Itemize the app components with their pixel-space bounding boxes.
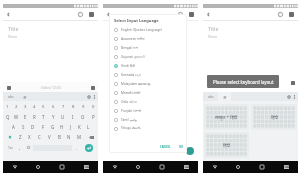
button[interactable]: Shift — [3, 132, 16, 142]
button[interactable]: Switch keyboard — [174, 161, 198, 173]
button[interactable]: N — [64, 132, 74, 142]
button[interactable]: Recent apps — [250, 161, 274, 173]
button[interactable]: Enter — [81, 142, 97, 153]
button[interactable]: R — [30, 112, 39, 122]
button[interactable]: I — [68, 112, 78, 122]
button[interactable]: Settings — [85, 93, 92, 100]
button[interactable]: Kannada ಕನ್ನಡ — [109, 70, 187, 79]
button[interactable]: Back — [4, 10, 13, 19]
button[interactable]: M — [74, 132, 84, 142]
button[interactable]: D — [28, 122, 38, 132]
button[interactable]: More — [292, 94, 297, 99]
button[interactable]: More — [92, 94, 97, 99]
button[interactable]: More options — [289, 79, 297, 87]
button[interactable]: B — [54, 132, 64, 142]
button[interactable]: Y — [48, 112, 58, 122]
button[interactable]: Home — [226, 161, 250, 173]
button[interactable]: Gujarati ગુજરાતી — [109, 52, 187, 61]
button[interactable]: Back — [204, 10, 213, 19]
button[interactable]: , — [16, 142, 24, 153]
button[interactable]: Hindi हिंदी — [109, 61, 187, 70]
button[interactable]: Bengali বাংলা — [109, 43, 187, 52]
button[interactable]: . — [73, 142, 81, 153]
button[interactable]: Telugu తెలుగు — [109, 124, 187, 133]
button[interactable]: More options — [88, 83, 97, 92]
button[interactable]: Tamil தமிழ் — [109, 115, 187, 124]
button[interactable]: Odia ଓଡ଼ିଆ — [109, 97, 187, 106]
button[interactable]: Recent apps — [150, 161, 174, 173]
button[interactable]: Recent apps — [50, 161, 74, 173]
button[interactable]: C — [34, 132, 44, 142]
button[interactable]: 2 — [12, 102, 21, 112]
staticText: M — [77, 134, 81, 140]
button[interactable]: Reminder — [276, 10, 285, 19]
button[interactable]: हिंदी — [251, 104, 297, 130]
button[interactable]: X — [25, 132, 34, 142]
button[interactable]: S — [18, 122, 28, 132]
button[interactable]: U — [58, 112, 68, 122]
button[interactable]: V — [44, 132, 54, 142]
button[interactable]: Switch keyboard — [74, 161, 98, 173]
button[interactable]: A — [8, 122, 18, 132]
button[interactable]: W — [12, 112, 21, 122]
button[interactable]: J — [66, 122, 75, 132]
button[interactable]: K — [75, 122, 84, 132]
button[interactable]: O — [78, 112, 88, 122]
button[interactable]: CANCEL — [158, 143, 173, 151]
button[interactable]: 3 — [21, 102, 30, 112]
button[interactable]: 5 — [39, 102, 48, 112]
button[interactable]: 9 — [78, 102, 88, 112]
button[interactable]: Switch keyboard — [274, 161, 298, 173]
button[interactable]: संस्कृत + हिंदी — [204, 104, 249, 130]
button[interactable]: 6 — [48, 102, 58, 112]
button[interactable]: T — [39, 112, 48, 122]
button[interactable]: हिंदी — [204, 132, 249, 158]
button[interactable]: 4 — [30, 102, 39, 112]
button[interactable]: 8 — [68, 102, 78, 112]
button[interactable]: abc — [205, 92, 216, 101]
staticText: C — [38, 134, 41, 140]
button[interactable]: Punjabi ਪੰਜਾਬੀ — [109, 106, 187, 115]
staticText: Title — [8, 25, 19, 32]
button[interactable]: Q — [3, 112, 12, 122]
button[interactable]: OK — [177, 143, 185, 151]
button[interactable]: H — [57, 122, 66, 132]
button[interactable]: Home — [126, 161, 150, 173]
button[interactable]: अ — [218, 92, 231, 101]
button[interactable]: abc — [5, 92, 16, 101]
button[interactable]: Home — [26, 161, 50, 173]
button[interactable]: 7 — [58, 102, 68, 112]
button[interactable]: 0 — [88, 102, 98, 112]
button[interactable]: Settings — [285, 93, 292, 100]
button[interactable]: 1 — [3, 102, 12, 112]
button[interactable]: Add — [4, 83, 13, 92]
button[interactable]: Archive — [187, 10, 196, 19]
button[interactable]: Back — [203, 161, 226, 173]
button[interactable]: G — [48, 122, 57, 132]
button[interactable]: Back — [104, 10, 113, 19]
button[interactable]: E — [21, 112, 30, 122]
staticText: Malayalam മലയാളം — [121, 82, 152, 86]
button[interactable]: Z — [16, 132, 25, 142]
button[interactable]: Marathi मराठी — [109, 88, 187, 97]
staticText: S — [22, 124, 25, 130]
button[interactable]: Emoji — [24, 142, 32, 153]
staticText: Marathi मराठी — [121, 91, 141, 95]
button[interactable]: Please select keyboard layout — [207, 75, 279, 88]
button[interactable]: Archive — [287, 10, 296, 19]
button[interactable]: L — [84, 122, 93, 132]
button[interactable]: P — [88, 112, 98, 122]
button[interactable]: ?१२ — [4, 142, 16, 153]
button[interactable]: Backspace — [84, 132, 98, 142]
button[interactable]: Assamese অসমীয়া — [109, 34, 187, 43]
button[interactable]: Back — [103, 161, 126, 173]
button[interactable]: अ — [18, 92, 31, 101]
button[interactable]: Reminder — [76, 10, 85, 19]
button[interactable]: Back — [3, 161, 26, 173]
button[interactable]: Reminder — [176, 10, 185, 19]
button[interactable]: F — [38, 122, 48, 132]
button[interactable]: Archive — [87, 10, 96, 19]
button[interactable]: English (Quebec Language) — [109, 25, 187, 34]
button[interactable]: Malayalam മലയാളം — [109, 79, 187, 88]
